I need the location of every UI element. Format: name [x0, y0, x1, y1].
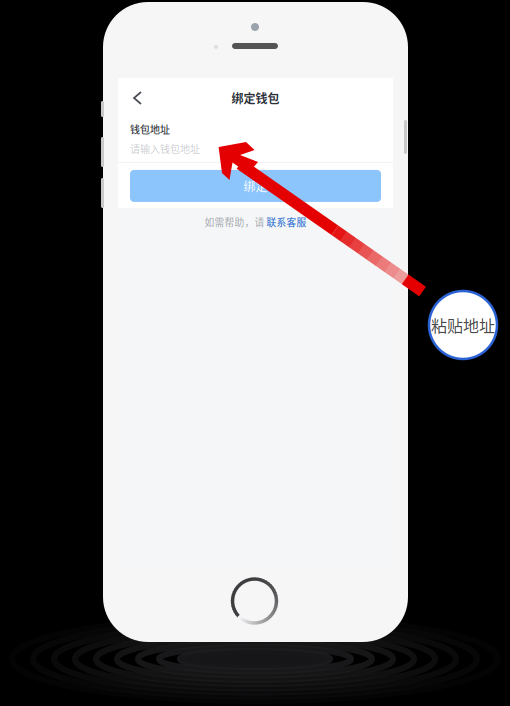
- staticText: 钱包地址: [130, 122, 170, 136]
- button[interactable]: 联系客服: [266, 215, 306, 229]
- staticText: 绑定: [243, 177, 267, 195]
- staticText: 请输入钱包地址: [130, 141, 200, 156]
- button[interactable]: 粘贴地址: [429, 291, 497, 359]
- staticText: 联系客服: [266, 215, 306, 229]
- staticText: 如需帮助，请: [204, 215, 266, 229]
- staticText: 粘贴地址: [431, 313, 495, 337]
- button[interactable]: Back: [118, 80, 155, 116]
- staticText: 绑定钱包: [231, 89, 279, 107]
- button[interactable]: 绑定: [130, 170, 381, 202]
